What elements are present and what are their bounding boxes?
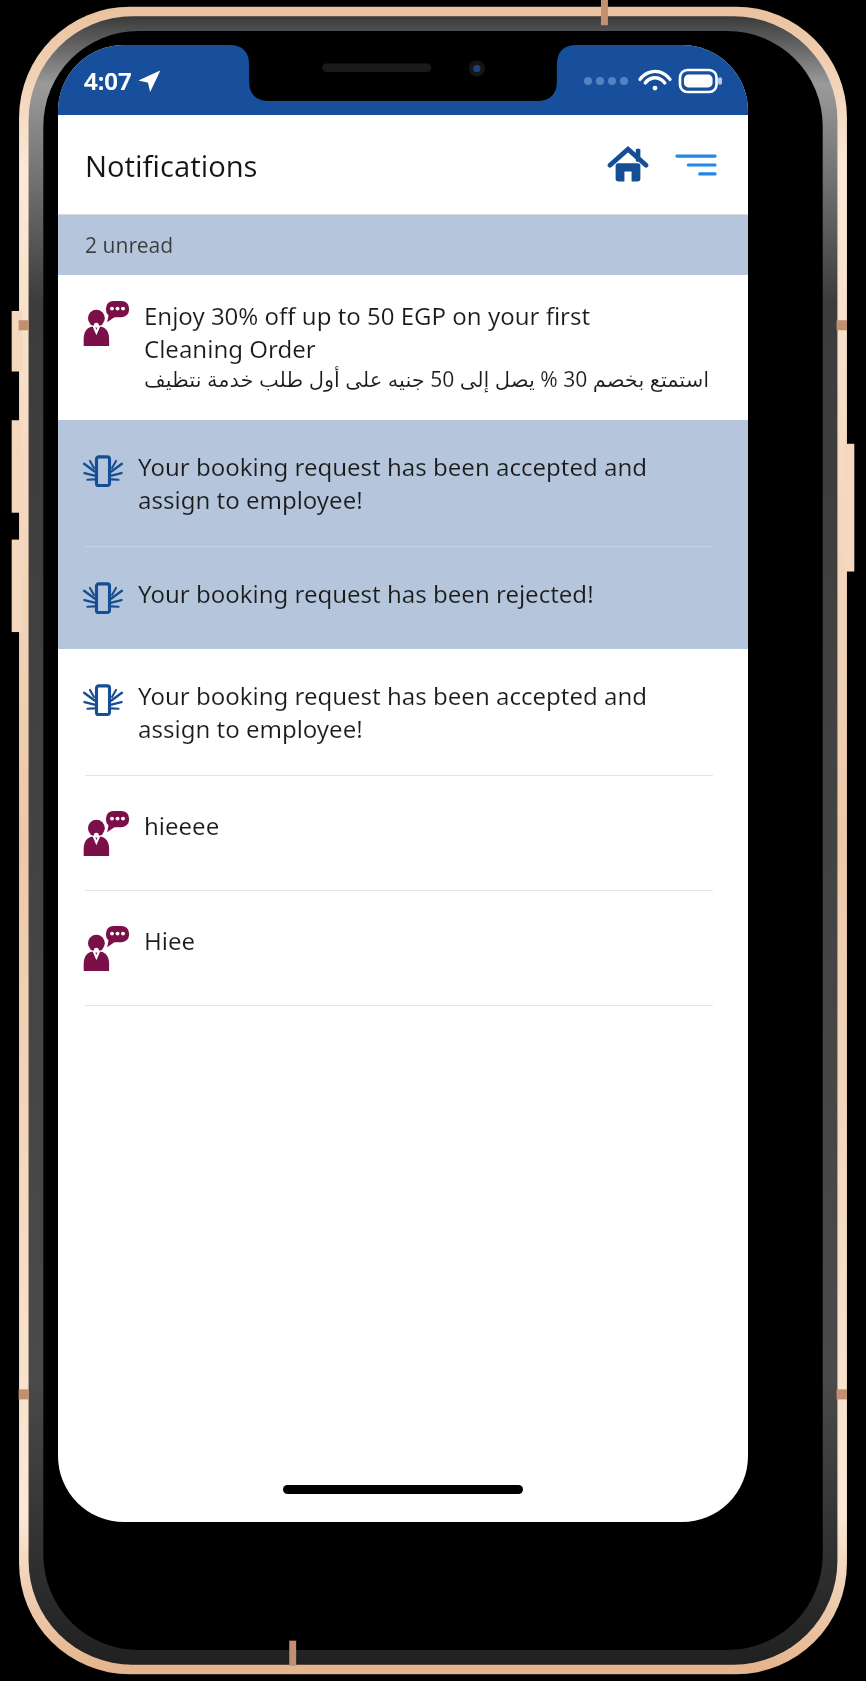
staticText: استمتع بخصم 30 % يصل إلى 50 جنيه على أول… [144,365,710,394]
staticText: 2 unread [85,231,174,260]
staticText: Hiee [144,924,196,957]
staticText: assign to employee! [138,712,363,745]
staticText: Cleaning Order [144,332,316,365]
staticText: hieeee [144,809,220,842]
staticText: 4:07 [84,64,132,97]
staticText: Your booking request has been rejected! [138,577,594,610]
button[interactable]: Hiee [58,891,748,1005]
button[interactable]: Menu [666,135,726,195]
staticText: assign to employee! [138,483,363,516]
button[interactable]: Enjoy 30% off up to 50 EGP on your first [58,275,748,420]
button[interactable]: Your booking request has been rejected! [58,547,748,649]
button[interactable]: Your booking request has been accepted a… [58,420,748,546]
staticText: Enjoy 30% off up to 50 EGP on your first [144,299,591,332]
staticText: Your booking request has been accepted a… [138,679,648,712]
button[interactable]: hieeee [58,776,748,890]
button[interactable]: Your booking request has been accepted a… [58,649,748,775]
button[interactable]: Home [596,133,660,197]
staticText: Your booking request has been accepted a… [138,450,648,483]
staticText: Notifications [85,146,258,185]
